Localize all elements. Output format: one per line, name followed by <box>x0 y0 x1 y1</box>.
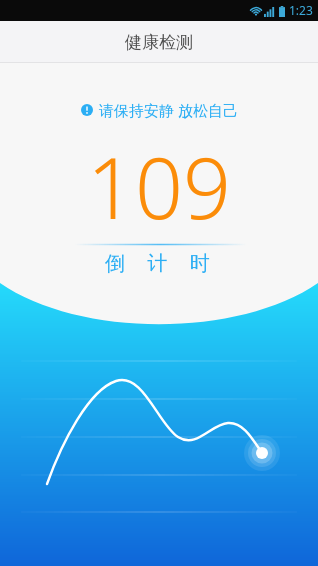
staticText: 健康检测 <box>125 32 193 53</box>
staticText: 1:23 <box>289 2 313 18</box>
other: Information <box>81 104 93 116</box>
staticText: 请保持安静 放松自己 <box>99 100 238 120</box>
staticText: 109 <box>87 129 231 243</box>
staticText: 倒 计 时 <box>105 249 214 276</box>
button[interactable]: 健康检测 <box>0 21 318 63</box>
